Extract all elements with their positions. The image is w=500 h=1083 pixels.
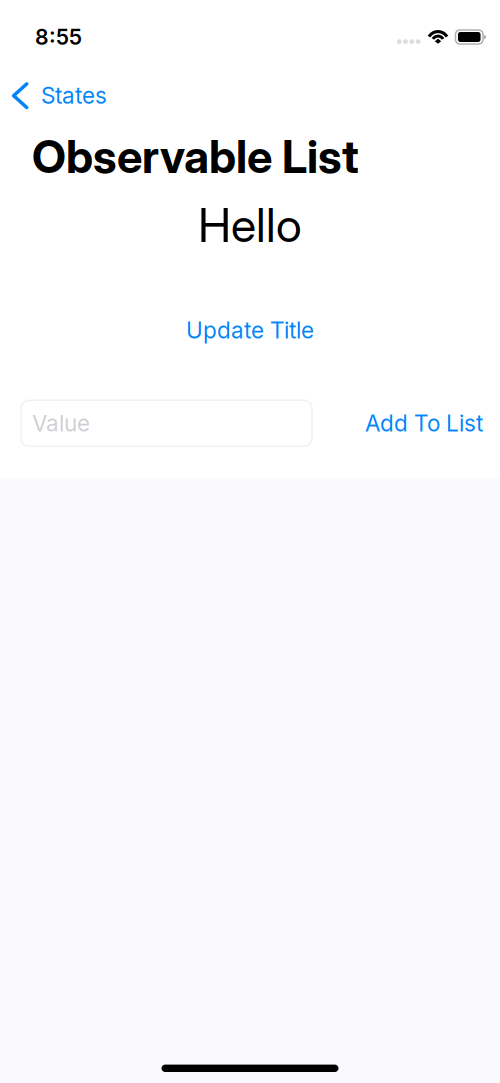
staticText: Hello: [198, 197, 302, 253]
staticText: States: [41, 82, 107, 109]
staticText: Observable List: [32, 129, 359, 184]
staticText: Update Title: [186, 317, 314, 344]
button[interactable]: States: [0, 72, 119, 116]
staticText: Value: [32, 410, 90, 437]
staticText: Add To List: [365, 410, 483, 437]
button[interactable]: Update Title: [176, 313, 324, 347]
staticText: 8:55: [35, 24, 82, 50]
button[interactable]: Add To List: [365, 400, 483, 446]
